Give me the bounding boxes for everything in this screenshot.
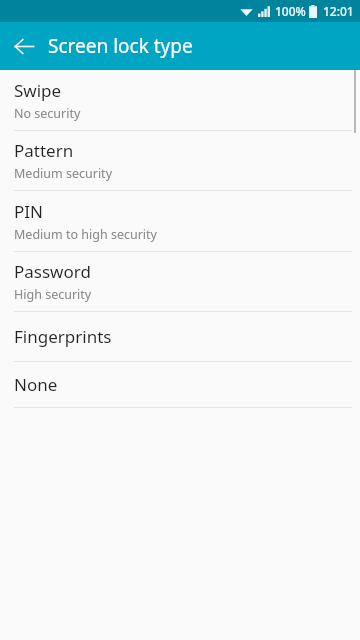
button[interactable]: Fingerprints [0,312,360,361]
staticText: 12:01 [323,3,354,19]
staticText: Screen lock type [48,33,193,59]
staticText: High security [14,286,92,303]
staticText: Pattern [14,139,74,162]
button[interactable]: Swipe [0,70,360,130]
staticText: 100% [275,3,306,19]
button[interactable]: Password [0,252,360,311]
button[interactable]: Pattern [0,131,360,190]
button[interactable]: None [0,362,360,407]
staticText: No security [14,105,81,122]
staticText: Medium to high security [14,226,157,243]
staticText: Password [14,260,91,283]
button[interactable]: PIN [0,191,360,251]
staticText: PIN [14,200,43,223]
staticText: None [14,373,58,396]
staticText: Fingerprints [14,325,112,348]
staticText: Swipe [14,79,62,102]
button[interactable]: Navigate up [0,22,48,70]
staticText: Medium security [14,165,113,182]
